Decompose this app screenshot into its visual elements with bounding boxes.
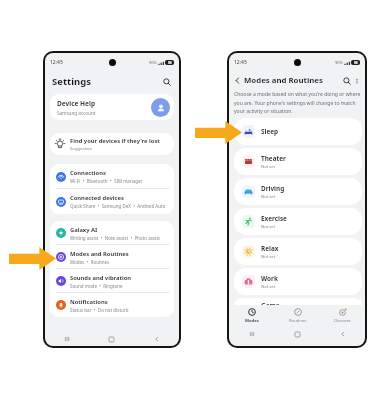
button[interactable]: Back bbox=[320, 327, 365, 341]
staticText: Not set bbox=[261, 284, 276, 290]
button[interactable]: Notifications bbox=[50, 293, 174, 317]
button[interactable]: Connected devices bbox=[50, 189, 174, 214]
staticText: Choose a mode based on what you're doing… bbox=[234, 91, 363, 114]
other: Next step bbox=[195, 121, 242, 144]
staticText: Wi-Fi • Bluetooth • SIM manager bbox=[70, 178, 143, 184]
staticText: 90 bbox=[168, 61, 172, 65]
staticText: Not set bbox=[261, 194, 276, 200]
staticText: Not set bbox=[261, 224, 276, 230]
button[interactable]: Back bbox=[134, 332, 179, 346]
button[interactable]: Find your devices if they're lost bbox=[50, 133, 174, 155]
button[interactable]: Galaxy AI bbox=[50, 221, 174, 245]
button[interactable]: Connections bbox=[50, 164, 174, 189]
staticText: Modes and Routines bbox=[244, 75, 323, 86]
staticText: Samsung account bbox=[57, 110, 96, 116]
staticText: Not set bbox=[261, 164, 276, 170]
staticText: Routines bbox=[289, 318, 307, 324]
staticText: Settings bbox=[52, 75, 91, 88]
staticText: Modes bbox=[245, 318, 259, 324]
button[interactable]: Search bbox=[161, 76, 172, 87]
button[interactable]: Sleep bbox=[234, 118, 362, 145]
button[interactable]: Discover bbox=[320, 305, 365, 327]
button[interactable]: Back bbox=[232, 75, 243, 86]
staticText: Find your devices if they're lost bbox=[70, 137, 160, 145]
button[interactable]: Driving bbox=[234, 178, 362, 205]
staticText: 90% bbox=[335, 60, 343, 65]
staticText: Game bbox=[261, 301, 280, 305]
staticText: Discover bbox=[334, 318, 351, 324]
staticText: Not set bbox=[261, 254, 276, 260]
staticText: 12:45 bbox=[50, 59, 63, 66]
staticText: Sounds and vibration bbox=[70, 274, 132, 282]
other: Next step bbox=[9, 247, 56, 270]
button[interactable]: Recents bbox=[45, 332, 89, 346]
staticText: Exercise bbox=[261, 214, 287, 223]
staticText: Modes • Routines bbox=[70, 259, 110, 265]
button[interactable]: Modes and Routines bbox=[50, 245, 174, 269]
staticText: Writing assist • Note assist • Photo ass… bbox=[70, 235, 160, 241]
button[interactable]: Theater bbox=[234, 148, 362, 175]
staticText: 90% bbox=[149, 60, 157, 65]
button[interactable]: Routines bbox=[275, 305, 320, 327]
staticText: Suggestion bbox=[70, 146, 93, 152]
staticText: Quick Share • Samsung DeX • Android Auto bbox=[70, 203, 166, 209]
staticText: Status bar • Do not disturb bbox=[70, 307, 129, 313]
button[interactable]: Sounds and vibration bbox=[50, 269, 174, 293]
button[interactable]: Modes bbox=[229, 305, 275, 327]
staticText: Connected devices bbox=[70, 194, 124, 202]
button[interactable]: Device Help bbox=[50, 94, 174, 120]
staticText: Relax bbox=[261, 244, 279, 253]
staticText: Sleep bbox=[261, 127, 279, 136]
button[interactable]: Recents bbox=[229, 327, 275, 341]
staticText: Theater bbox=[261, 154, 286, 163]
staticText: Galaxy AI bbox=[70, 226, 98, 234]
staticText: Device Help bbox=[57, 99, 95, 108]
button[interactable]: Work bbox=[234, 268, 362, 295]
staticText: 12:45 bbox=[234, 59, 247, 66]
staticText: 90 bbox=[354, 61, 358, 65]
staticText: Modes and Routines bbox=[70, 250, 129, 258]
button[interactable]: Home bbox=[89, 332, 134, 346]
button[interactable]: Relax bbox=[234, 238, 362, 265]
staticText: Sound mode • Ringtone bbox=[70, 283, 123, 289]
staticText: Notifications bbox=[70, 298, 108, 306]
staticText: Work bbox=[261, 274, 278, 283]
button[interactable]: Exercise bbox=[234, 208, 362, 235]
button[interactable]: More options bbox=[352, 76, 361, 85]
button[interactable]: Search bbox=[341, 75, 352, 86]
staticText: Driving bbox=[261, 184, 285, 193]
staticText: Connections bbox=[70, 169, 106, 177]
button[interactable]: Home bbox=[275, 327, 320, 341]
